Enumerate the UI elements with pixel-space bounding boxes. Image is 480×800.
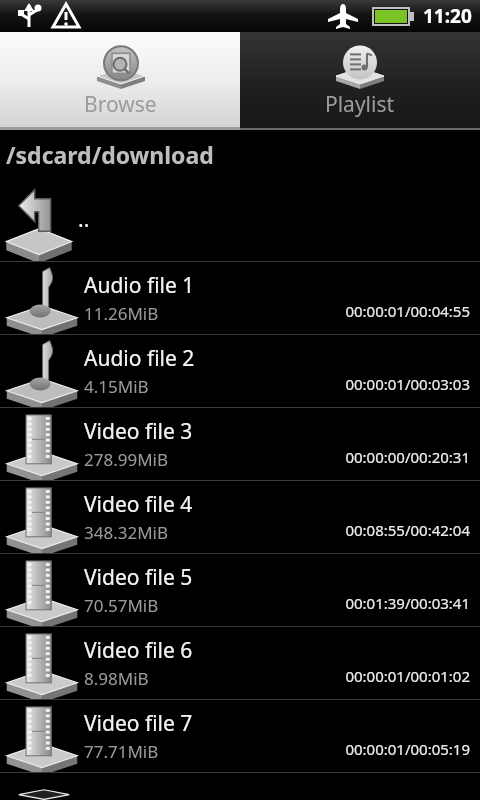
button[interactable]: Video file 3 xyxy=(0,408,480,480)
button[interactable]: Video file 7 xyxy=(0,700,480,772)
button[interactable]: Browse xyxy=(0,32,240,130)
staticText: 00:08:55/00:42:04 xyxy=(345,520,470,540)
staticText: Video file 5 xyxy=(84,563,193,592)
staticText: 00:00:01/00:04:55 xyxy=(345,301,470,321)
staticText: 77.71MiB xyxy=(84,740,159,763)
staticText: Audio file 1 xyxy=(84,271,195,300)
staticText: 8.98MiB xyxy=(84,667,149,690)
button[interactable]: Audio file 1 xyxy=(0,262,480,334)
staticText: 00:01:39/00:03:41 xyxy=(345,593,470,613)
staticText: 11:20 xyxy=(423,3,472,29)
staticText: 00:00:00/00:20:31 xyxy=(345,447,470,467)
staticText: Video file 3 xyxy=(84,417,193,446)
staticText: Playlist xyxy=(325,90,395,119)
staticText: 4.15MiB xyxy=(84,375,149,398)
staticText: 348.32MiB xyxy=(84,521,169,544)
staticText: 00:00:01/00:05:19 xyxy=(345,739,470,759)
button[interactable]: Audio file 2 xyxy=(0,335,480,407)
button[interactable]: Playlist xyxy=(240,32,480,130)
staticText: Video file 4 xyxy=(84,490,193,519)
button[interactable]: .. xyxy=(0,178,480,261)
staticText: Audio file 2 xyxy=(84,344,195,373)
button[interactable]: Video file 4 xyxy=(0,481,480,553)
button[interactable]: Video file 5 xyxy=(0,554,480,626)
staticText: 00:00:01/00:03:03 xyxy=(345,374,470,394)
staticText: 11.26MiB xyxy=(84,302,159,325)
staticText: 70.57MiB xyxy=(84,594,159,617)
button[interactable]: Video file 6 xyxy=(0,627,480,699)
staticText: .. xyxy=(78,205,90,234)
staticText: Video file 6 xyxy=(84,636,193,665)
staticText: Video file 7 xyxy=(84,709,193,738)
staticText: 278.99MiB xyxy=(84,448,169,471)
staticText: 00:00:01/00:01:02 xyxy=(345,666,470,686)
staticText: Browse xyxy=(84,90,157,119)
staticText: /sdcard/download xyxy=(6,139,214,170)
